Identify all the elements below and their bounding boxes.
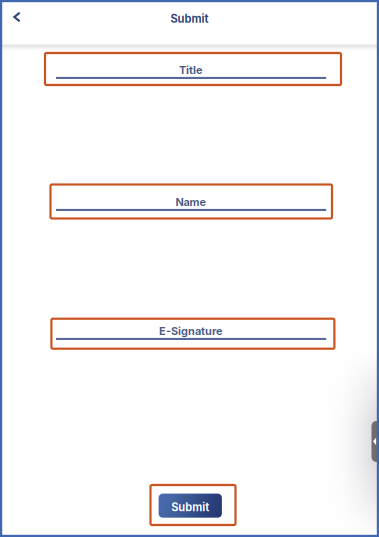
staticText: Title bbox=[179, 63, 203, 77]
staticText: Submit bbox=[170, 12, 208, 25]
staticText: Submit bbox=[171, 500, 209, 514]
button[interactable]: Title bbox=[56, 64, 326, 79]
button[interactable]: Submit bbox=[150, 485, 235, 525]
button[interactable]: E-Signature bbox=[56, 325, 326, 340]
button[interactable]: Name bbox=[56, 196, 326, 211]
button[interactable]: Open menu bbox=[371, 421, 379, 462]
staticText: Name bbox=[176, 195, 207, 209]
staticText: E-Signature bbox=[159, 324, 223, 338]
button[interactable]: Back bbox=[0, 0, 34, 34]
